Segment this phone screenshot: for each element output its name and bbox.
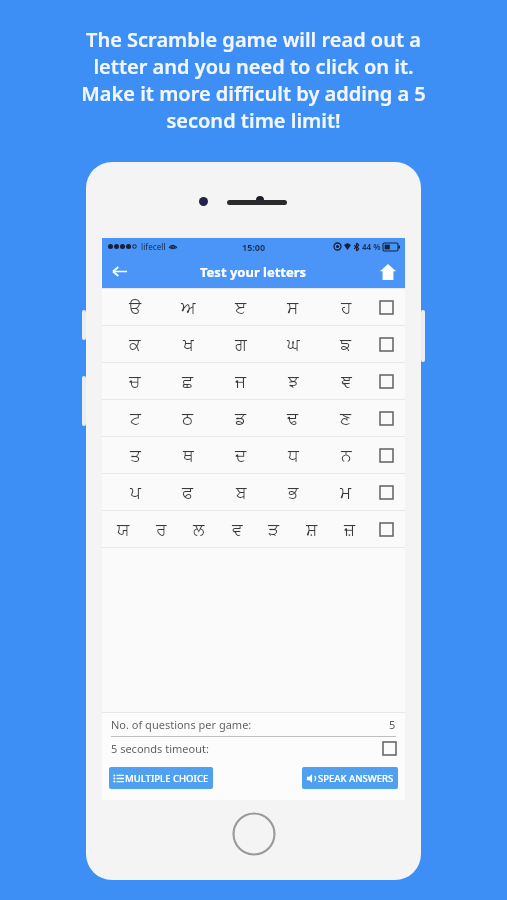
staticText: MULTIPLE CHOICE [125,772,209,785]
button[interactable]: ਠ [171,400,205,436]
staticText: ਜ਼ [344,521,356,538]
button[interactable]: Select row [367,400,405,436]
staticText: ਹ [341,299,352,316]
button[interactable]: ਪ [118,474,152,510]
button[interactable]: 5 seconds timeout: [102,737,405,760]
staticText: ਫ [182,484,194,501]
staticText: ਖ [183,336,194,353]
button[interactable]: ਛ [171,363,205,399]
staticText: ਗ [235,336,247,353]
staticText: ੳ [129,299,142,316]
staticText: ਤ [130,447,141,464]
button[interactable]: ਗ [224,326,258,362]
button[interactable]: ਚ [118,363,152,399]
button[interactable]: ੳ [118,289,152,325]
staticText: ਟ [130,410,141,427]
staticText: ਯ [117,521,130,538]
button[interactable]: ਧ [276,437,310,473]
button[interactable]: Home [371,255,405,288]
button[interactable]: MULTIPLE CHOICE [109,767,213,789]
button[interactable]: ਞ [329,363,363,399]
button[interactable]: ਸ਼ [299,511,325,547]
staticText: ਛ [182,373,194,390]
button[interactable]: ਖ [171,326,205,362]
button[interactable]: No. of questions per game: [102,713,405,736]
button[interactable]: Home button [232,812,276,856]
staticText: ਸ [287,299,299,316]
staticText: ਸ਼ [306,521,318,538]
button[interactable]: ਯ [110,511,136,547]
button[interactable]: ਥ [171,437,205,473]
staticText: ਭ [288,484,299,501]
staticText: ਰ [156,521,167,538]
button[interactable]: ਣ [329,400,363,436]
button[interactable]: ਰ [148,511,174,547]
staticText: ਵ [232,521,243,538]
staticText: 15:00 [242,241,266,253]
staticText: ਥ [183,447,194,464]
staticText: ਢ [287,410,299,427]
staticText: ਣ [340,410,352,427]
button[interactable]: ਨ [329,437,363,473]
button[interactable]: ਤ [118,437,152,473]
staticText: ਚ [129,373,141,390]
button[interactable]: ੲ [224,289,258,325]
staticText: ਠ [182,410,194,427]
staticText: SPEAK ANSWERS [318,772,394,785]
button[interactable]: Select row [367,437,405,473]
button[interactable]: ਘ [276,326,310,362]
button[interactable]: SPEAK ANSWERS [302,767,398,789]
button[interactable]: ਦ [224,437,258,473]
staticText: ਡ [235,410,247,427]
button[interactable]: ਫ [171,474,205,510]
button[interactable]: ਡ [224,400,258,436]
button[interactable]: ਟ [118,400,152,436]
staticText: ਅ [181,299,196,316]
button[interactable]: Back [102,255,136,288]
staticText: ਲ [193,521,205,538]
staticText: ਧ [288,447,299,464]
button[interactable]: Select row [367,363,405,399]
button[interactable]: ਙ [329,326,363,362]
staticText: The Scramble game will read out a letter… [81,26,426,134]
staticText: 5 seconds timeout: [111,741,209,756]
button[interactable]: ਜ਼ [337,511,363,547]
staticText: ਙ [340,336,352,353]
button[interactable]: ਜ [224,363,258,399]
staticText: ੜ [268,521,280,538]
staticText: ਮ [340,484,352,501]
button[interactable]: ਭ [276,474,310,510]
staticText: 44 % [362,241,381,252]
staticText: No. of questions per game: [111,717,252,732]
button[interactable]: ਹ [329,289,363,325]
button[interactable]: ਢ [276,400,310,436]
staticText: ਕ [129,336,141,353]
button[interactable]: Select row [367,474,405,510]
button[interactable]: ਸ [276,289,310,325]
staticText: ਜ [235,373,247,390]
staticText: 5 [389,717,396,732]
button[interactable]: ਬ [224,474,258,510]
staticText: lifecell [141,241,166,252]
button[interactable]: ਅ [171,289,205,325]
button[interactable]: ਕ [118,326,152,362]
button[interactable]: ਝ [276,363,310,399]
button[interactable]: ਮ [329,474,363,510]
staticText: ਪ [130,484,141,501]
staticText: ਨ [341,447,352,464]
staticText: ਘ [287,336,300,353]
button[interactable]: ੜ [261,511,287,547]
staticText: ਦ [235,447,247,464]
button[interactable]: ਵ [224,511,250,547]
button[interactable]: Select row [367,289,405,325]
button[interactable]: ਲ [186,511,212,547]
staticText: ਞ [341,373,352,390]
staticText: ਬ [236,484,247,501]
button[interactable]: Select row [367,511,405,547]
staticText: ੲ [235,299,247,316]
button[interactable]: Select row [367,326,405,362]
staticText: Test your letters [200,263,307,281]
staticText: ਝ [288,373,299,390]
